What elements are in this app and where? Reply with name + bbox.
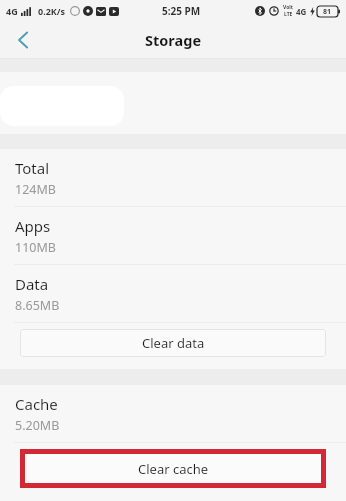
button[interactable]: Data	[0, 265, 346, 322]
button[interactable]: Back	[8, 25, 38, 55]
staticText: LTE	[284, 11, 293, 18]
staticText: Data	[15, 274, 49, 294]
button[interactable]: Total	[0, 149, 346, 206]
staticText: 4G	[6, 5, 18, 17]
staticText: 81	[323, 7, 332, 17]
staticText: Volt	[283, 4, 293, 11]
staticText: Apps	[15, 216, 51, 236]
staticText: Clear cache	[138, 460, 209, 478]
staticText: 110MB	[15, 239, 56, 256]
button[interactable]: Apps	[0, 207, 346, 264]
staticText: Total	[15, 158, 50, 178]
staticText: 124MB	[15, 181, 56, 198]
button[interactable]: Clear data	[20, 329, 326, 357]
staticText: 0.2K/s	[38, 5, 66, 17]
button[interactable]: Cache	[0, 385, 346, 442]
staticText: 5:25 PM	[162, 4, 201, 18]
button[interactable]: Clear cache	[25, 454, 321, 483]
staticText: Clear data	[142, 334, 205, 352]
staticText: 5.20MB	[15, 417, 60, 434]
staticText: Cache	[15, 394, 58, 414]
staticText: 4G	[296, 6, 307, 17]
staticText: Storage	[145, 30, 202, 50]
staticText: 8.65MB	[15, 297, 60, 314]
